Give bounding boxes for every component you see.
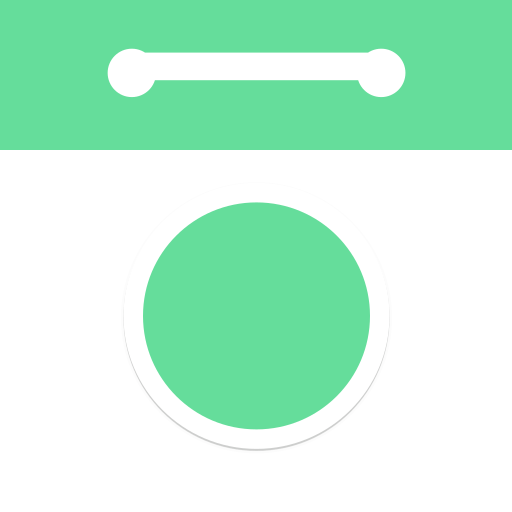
button[interactable]: Zoom slider bbox=[108, 49, 405, 97]
button[interactable]: Shutter bbox=[120, 180, 392, 452]
